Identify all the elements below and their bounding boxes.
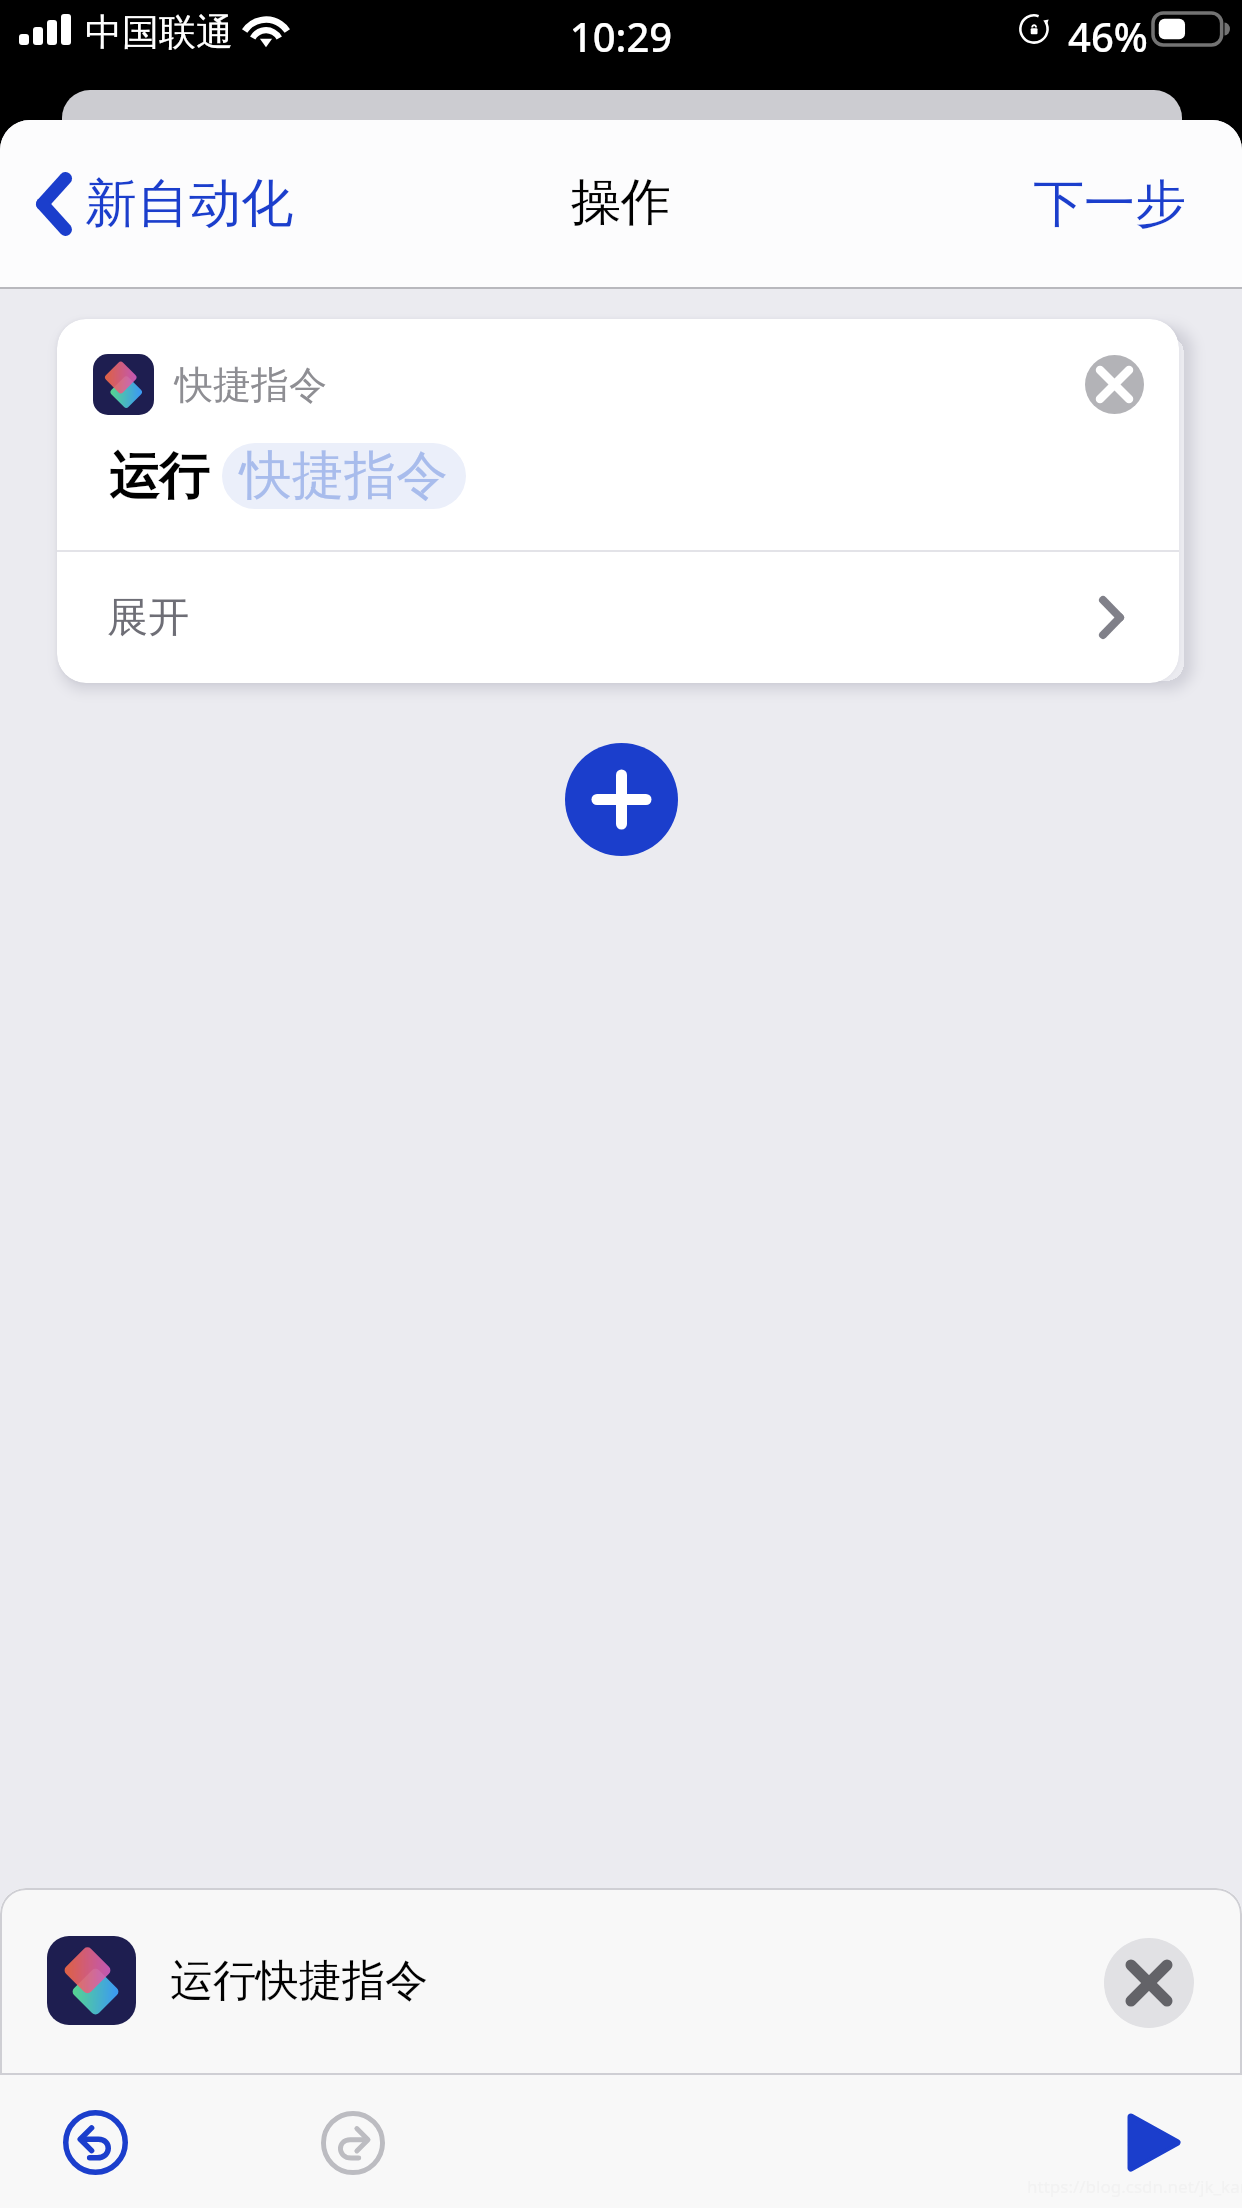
button[interactable]: 重做 — [302, 2092, 403, 2193]
button[interactable]: 下一步 — [977, 120, 1242, 287]
staticText: 运行 — [109, 445, 209, 508]
button[interactable]: 移除操作 — [1085, 355, 1144, 414]
staticText: 快捷指令 — [175, 361, 327, 409]
staticText: 快捷指令 — [240, 443, 448, 509]
button[interactable]: 运行快捷指令 — [0, 1888, 1242, 2075]
staticText: 中国联通 — [85, 9, 233, 56]
button[interactable]: 撤销 — [45, 2092, 146, 2193]
button[interactable]: 快捷指令 — [222, 443, 466, 509]
button[interactable]: 关闭建议 — [1104, 1938, 1194, 2028]
button[interactable]: 新自动化 — [16, 120, 307, 287]
staticText: 46% — [1068, 9, 1148, 63]
staticText: 下一步 — [1033, 172, 1186, 236]
staticText: 运行快捷指令 — [170, 1954, 428, 2008]
button[interactable]: 添加操作 — [565, 743, 678, 856]
staticText: 10:29 — [0, 9, 1242, 63]
staticText: 新自动化 — [85, 171, 293, 237]
button[interactable]: 展开 — [57, 552, 1179, 683]
staticText: 展开 — [107, 592, 189, 644]
button[interactable]: 运行 — [1104, 2092, 1204, 2192]
staticText: 操作 — [571, 171, 671, 234]
